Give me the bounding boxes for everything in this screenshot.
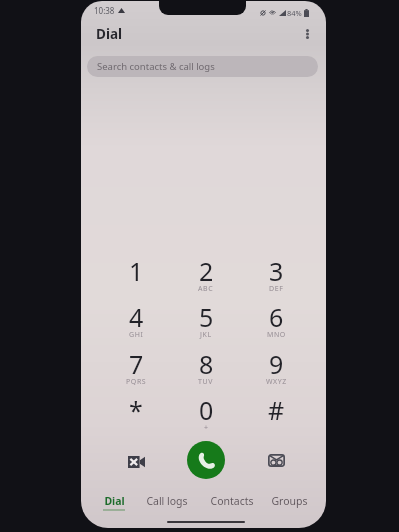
button[interactable]: 5 (173, 291, 239, 337)
button[interactable]: * (103, 384, 169, 430)
staticText: JKL (200, 330, 212, 340)
staticText: + (204, 423, 209, 433)
button[interactable]: 3 (243, 245, 309, 291)
button[interactable]: 9 (243, 338, 309, 384)
button[interactable]: 6 (243, 291, 309, 337)
staticText: TUV (198, 377, 214, 387)
button[interactable]: 1 (103, 245, 169, 291)
staticText: 7 (129, 347, 144, 381)
staticText: DEF (269, 284, 284, 294)
staticText: 84% (287, 8, 302, 18)
button[interactable]: 4 (103, 291, 169, 337)
staticText: 0 (199, 393, 214, 427)
staticText: 6 (269, 300, 284, 334)
staticText: 3 (269, 254, 284, 288)
staticText: 1 (129, 254, 144, 288)
button[interactable]: Contacts (202, 494, 262, 516)
button[interactable]: Video call (123, 449, 149, 475)
staticText: 9 (269, 347, 284, 381)
button[interactable]: # (243, 384, 309, 430)
staticText: Dial (104, 494, 125, 508)
button[interactable]: 7 (103, 338, 169, 384)
staticText: 8 (199, 347, 214, 381)
staticText: WXYZ (266, 377, 287, 387)
staticText: PQRS (126, 377, 147, 387)
button[interactable]: Call (187, 441, 225, 479)
button[interactable]: Groups (259, 494, 319, 516)
staticText: GHI (129, 330, 144, 340)
staticText: 5 (199, 300, 214, 334)
staticText: Groups (271, 494, 308, 508)
button[interactable]: More options (296, 23, 318, 45)
staticText: * (129, 393, 143, 427)
staticText: 2 (199, 254, 214, 288)
staticText: Contacts (210, 494, 254, 508)
staticText: ABC (198, 284, 214, 294)
staticText: Dial (96, 25, 123, 43)
staticText: Call logs (146, 494, 188, 508)
button[interactable]: Call logs (137, 494, 197, 516)
button[interactable]: Dial (84, 494, 144, 516)
button[interactable]: 2 (173, 245, 239, 291)
staticText: 10:38 (94, 5, 115, 16)
button[interactable]: 0 (173, 384, 239, 430)
button[interactable]: 8 (173, 338, 239, 384)
staticText: MNO (267, 330, 286, 340)
staticText: 4 (129, 300, 144, 334)
staticText: # (268, 393, 285, 427)
button[interactable]: Search contacts & call logs (87, 56, 318, 77)
button[interactable]: Voicemail (263, 447, 289, 473)
staticText: Search contacts & call logs (97, 60, 215, 73)
